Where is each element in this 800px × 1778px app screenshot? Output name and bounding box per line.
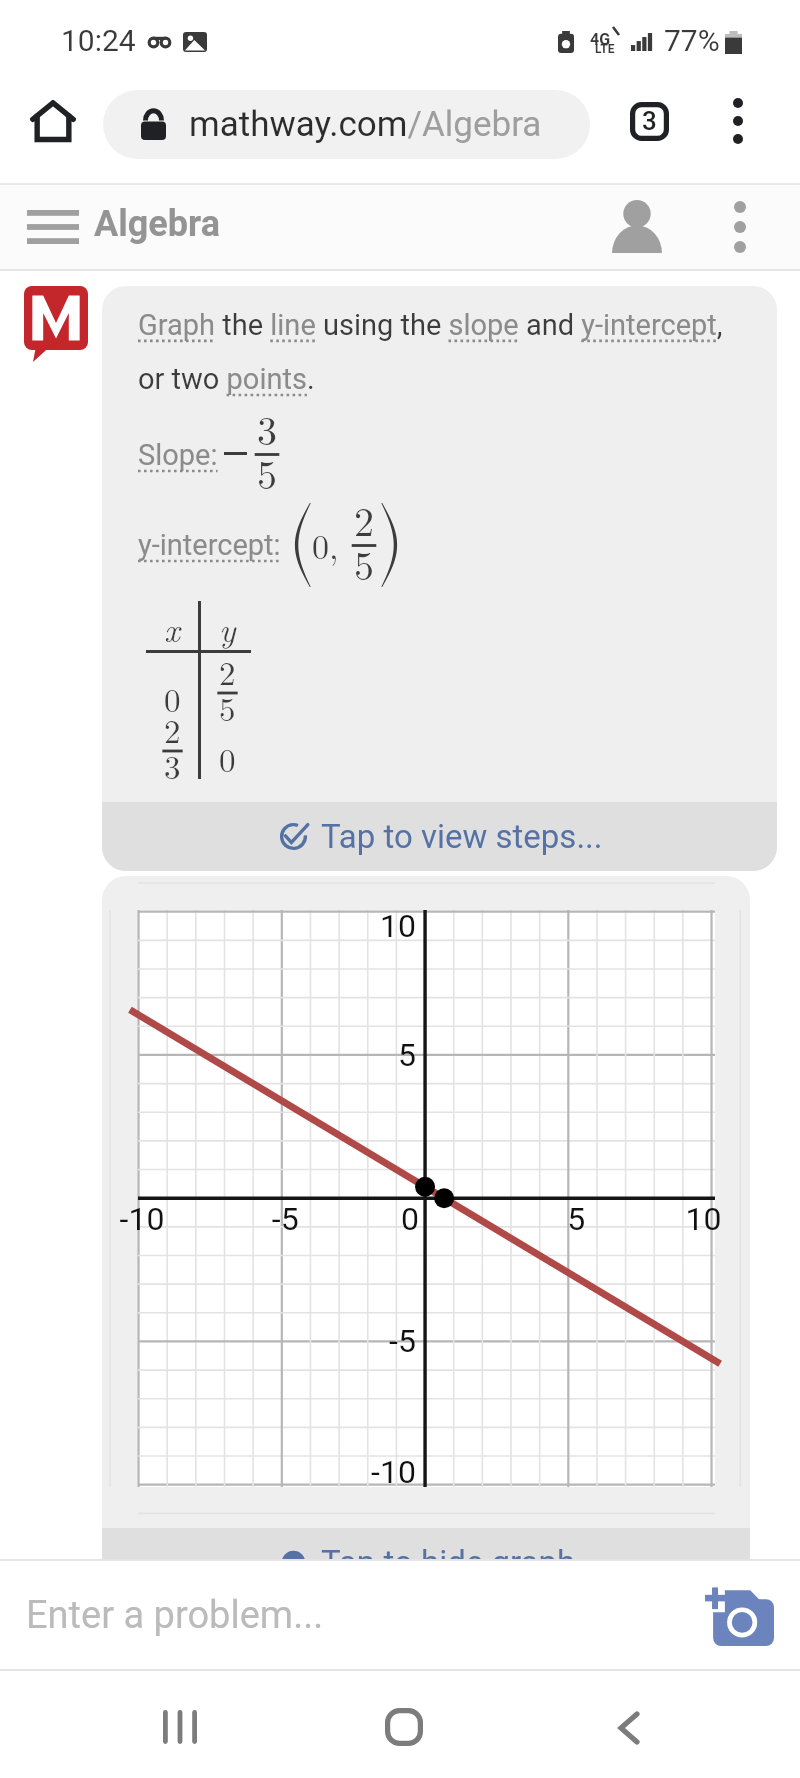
button[interactable]: Home	[340, 1674, 468, 1778]
staticText: y	[219, 604, 236, 652]
staticText: x	[164, 604, 180, 652]
staticText: 0,	[312, 521, 339, 569]
button[interactable]: Back	[562, 1675, 696, 1778]
button[interactable]: Enter a problem...	[0, 1561, 800, 1669]
button[interactable]: Tap to hide graph	[102, 1528, 750, 1597]
staticText: Tap to hide graph	[321, 1543, 576, 1582]
staticText: LTE	[595, 42, 615, 56]
staticText: Enter a problem...	[26, 1593, 324, 1638]
button[interactable]: mathway.com/Algebra	[103, 90, 590, 159]
staticText: 3	[642, 106, 657, 136]
staticText: Tap to view steps...	[321, 817, 603, 856]
button[interactable]: Home	[18, 88, 88, 154]
staticText: Graph the line using the slope and y-int…	[138, 308, 723, 396]
button[interactable]: Tap to view steps...	[102, 802, 777, 871]
staticText: Algebra	[94, 203, 220, 245]
button[interactable]: More options	[706, 188, 774, 266]
staticText: 4G	[590, 30, 611, 49]
staticText: 0	[164, 675, 181, 722]
button[interactable]: Recent apps	[113, 1674, 247, 1778]
staticText: 10:24	[61, 23, 136, 58]
staticText: y-intercept:	[138, 528, 281, 562]
button[interactable]: Menu	[10, 190, 96, 264]
staticText: 77%	[664, 23, 720, 58]
button[interactable]: Take a photo of a problem	[694, 1565, 784, 1665]
staticText: mathway.com/Algebra	[189, 104, 542, 145]
staticText: 0	[219, 735, 236, 782]
staticText: Slope:	[138, 438, 218, 472]
button[interactable]: More options	[704, 87, 772, 155]
button[interactable]: Tabs	[616, 87, 682, 155]
button[interactable]: Account	[597, 188, 676, 266]
